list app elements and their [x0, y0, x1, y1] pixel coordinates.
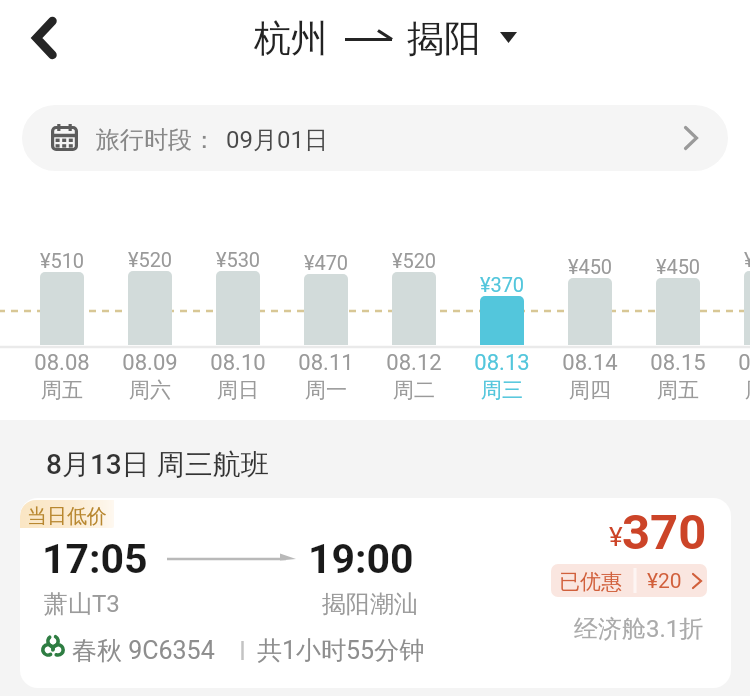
staticText: 当日低价: [27, 504, 107, 528]
staticText: 已优惠: [559, 569, 622, 595]
staticText: ¥20: [647, 569, 682, 594]
button[interactable]: 旅行时段：: [22, 105, 728, 171]
staticText: ¥: [609, 522, 623, 552]
staticText: 周六: [706, 377, 750, 403]
staticText: ¥370: [442, 273, 562, 296]
staticText: ¥510: [2, 249, 122, 272]
staticText: 杭州: [254, 15, 328, 62]
staticText: ¥520: [90, 248, 210, 271]
staticText: 8月13日 周三航班: [46, 447, 269, 482]
staticText: ¥480: [706, 248, 750, 271]
staticText: 揭阳: [407, 15, 481, 62]
staticText: 共1小时55分钟: [257, 635, 425, 666]
staticText: ¥450: [530, 255, 650, 278]
staticText: 370: [622, 504, 707, 561]
button[interactable]: Back: [12, 6, 76, 70]
staticText: ¥530: [178, 248, 298, 271]
button[interactable]: 当日低价: [20, 498, 731, 688]
staticText: 08.13: [442, 350, 562, 376]
staticText: 周二: [354, 377, 474, 403]
staticText: 周日: [178, 377, 298, 403]
staticText: 周六: [90, 377, 210, 403]
staticText: 08.12: [354, 350, 474, 376]
staticText: 萧山T3: [44, 589, 120, 619]
staticText: 19:00: [308, 535, 414, 583]
staticText: 17:05: [42, 535, 148, 583]
staticText: 周三: [442, 377, 562, 403]
staticText: 周四: [530, 377, 650, 403]
staticText: 经济舱3.1折: [574, 614, 704, 644]
staticText: 08.14: [530, 350, 650, 376]
staticText: ¥470: [266, 251, 386, 274]
staticText: 08.11: [266, 350, 386, 376]
staticText: 08.15: [618, 350, 738, 376]
staticText: 09月01日: [226, 125, 328, 155]
staticText: 08.10: [178, 350, 298, 376]
staticText: 周五: [2, 377, 122, 403]
staticText: 周五: [618, 377, 738, 403]
staticText: 08.09: [90, 350, 210, 376]
staticText: ¥450: [618, 255, 738, 278]
staticText: 旅行时段：: [96, 125, 216, 155]
button[interactable]: 已优惠: [551, 564, 707, 597]
staticText: 08.16: [706, 350, 750, 376]
staticText: 揭阳潮汕: [322, 589, 418, 619]
staticText: 08.08: [2, 350, 122, 376]
staticText: 周一: [266, 377, 386, 403]
staticText: 春秋 9C6354: [72, 635, 215, 666]
staticText: ¥520: [354, 249, 474, 272]
